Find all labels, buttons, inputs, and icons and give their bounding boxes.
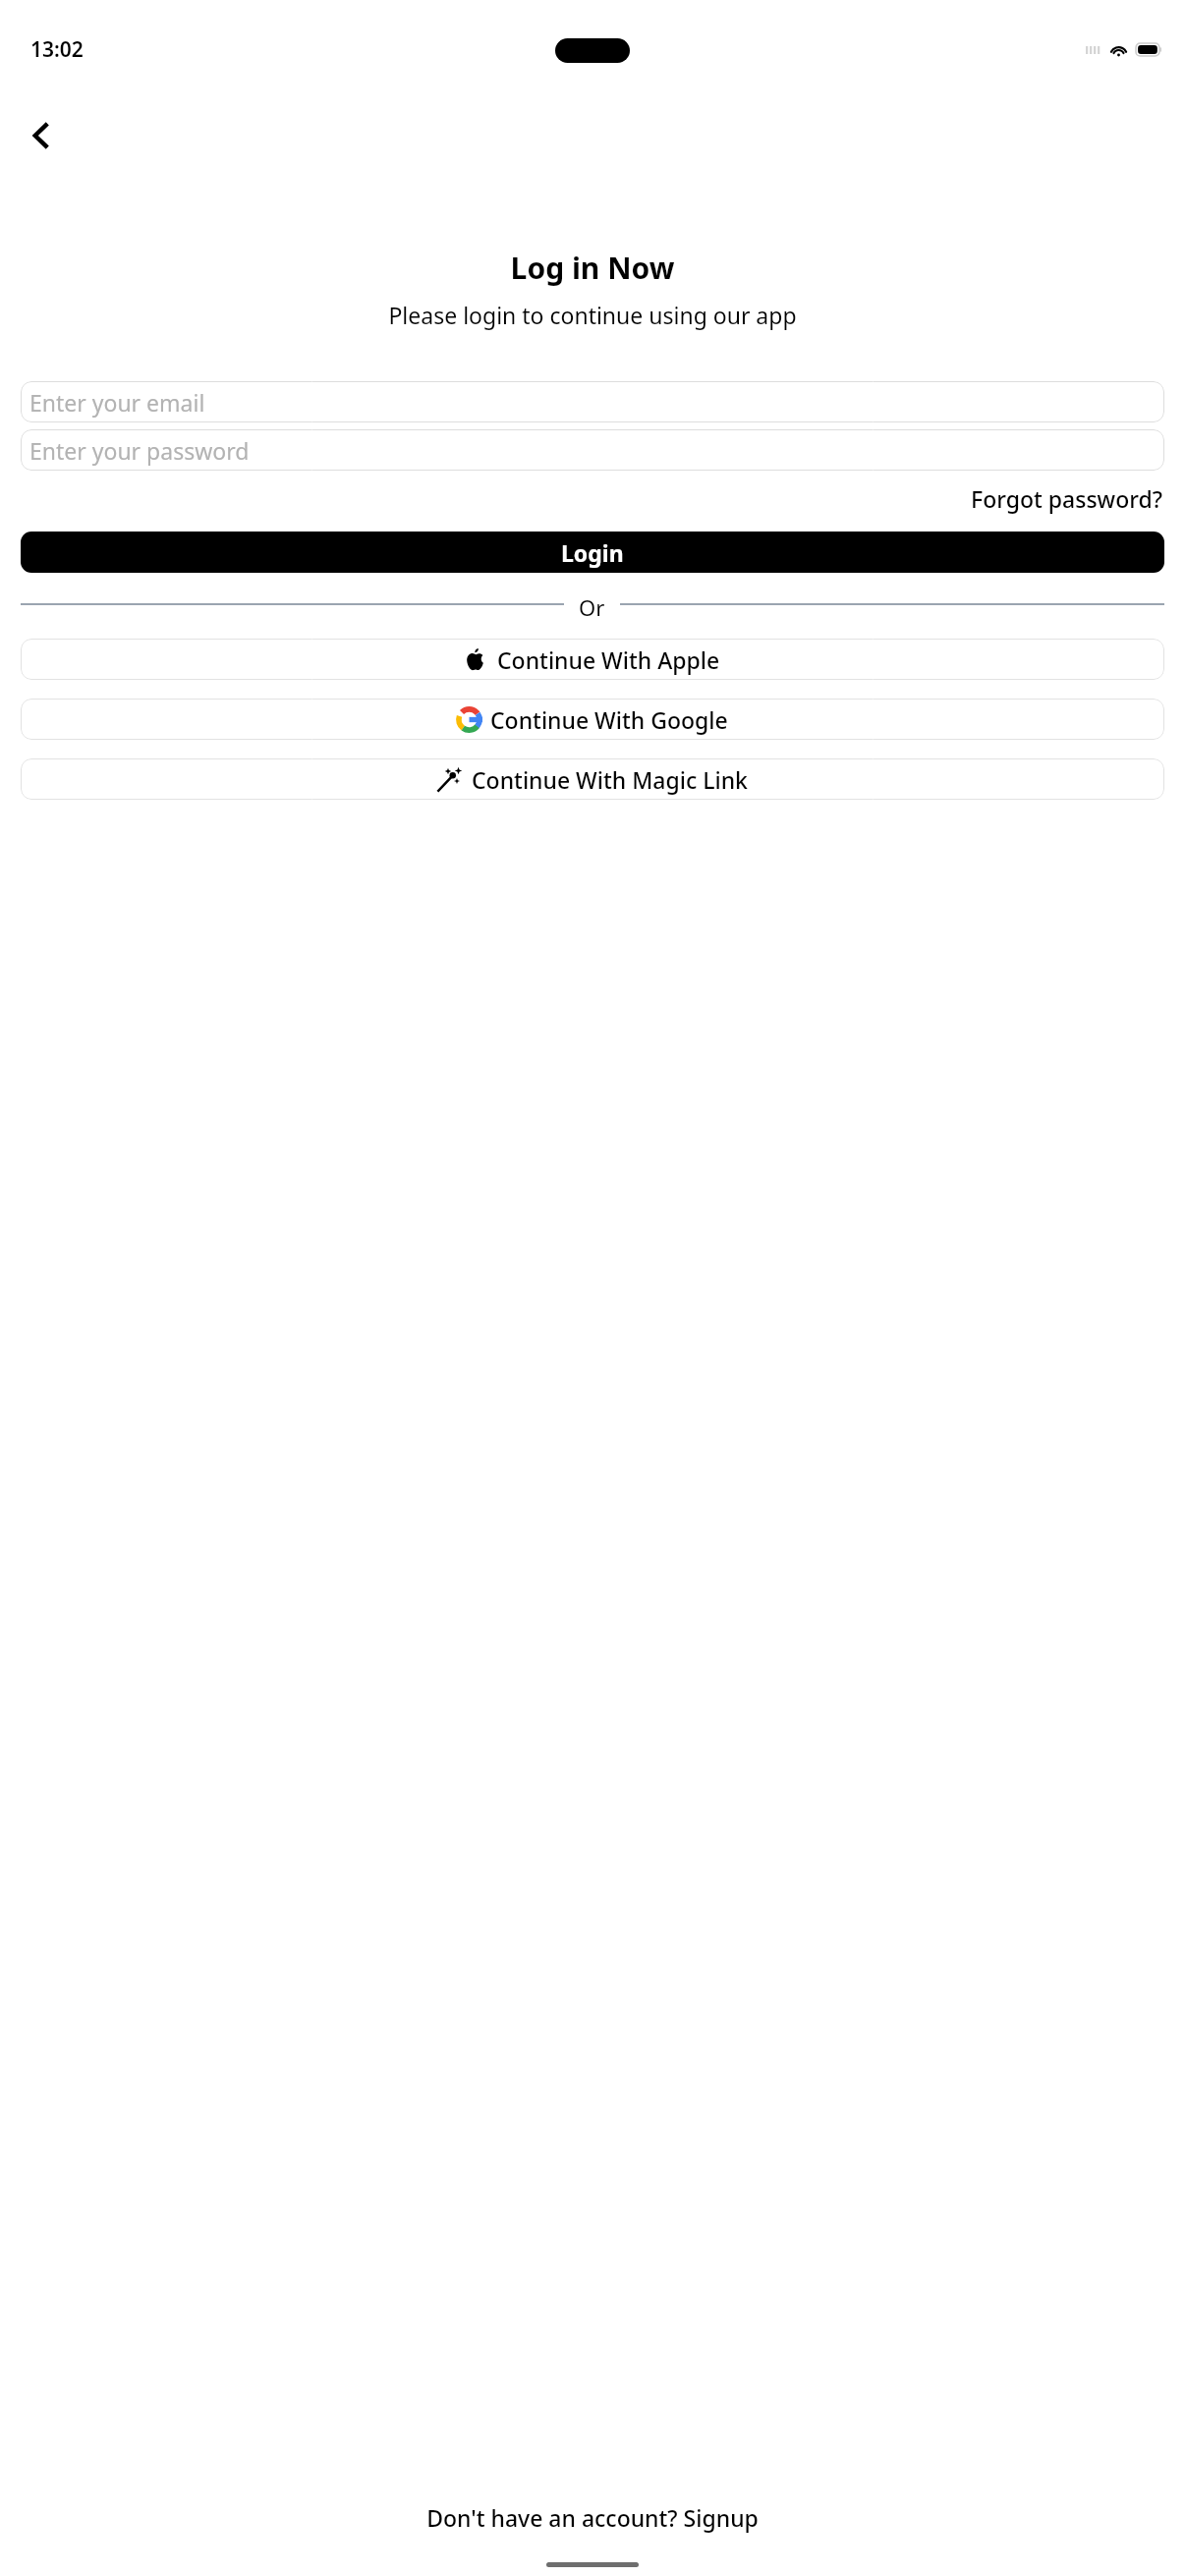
staticText: Continue With Magic Link <box>472 764 748 795</box>
button[interactable]: Enter your password <box>21 429 1164 471</box>
button[interactable]: Continue With Magic Link <box>21 758 1164 800</box>
button[interactable]: Back <box>14 108 69 163</box>
staticText: Don't have an account? Signup <box>426 2502 759 2533</box>
button[interactable]: Login <box>21 532 1164 573</box>
button[interactable]: Continue With Apple <box>21 639 1164 680</box>
staticText: Log in Now <box>0 248 1185 288</box>
staticText: Login <box>561 537 624 568</box>
staticText: Enter your password <box>29 435 250 466</box>
button[interactable]: Enter your email <box>21 381 1164 422</box>
staticText: Please login to continue using our app <box>0 300 1185 330</box>
staticText: Forgot password? <box>971 483 1162 514</box>
staticText: 13:02 <box>30 35 84 64</box>
staticText: Enter your email <box>29 387 205 418</box>
staticText: Continue With Apple <box>497 644 720 675</box>
button[interactable]: Continue With Google <box>21 699 1164 740</box>
button[interactable]: Forgot password? <box>969 481 1164 516</box>
staticText: Continue With Google <box>490 704 728 735</box>
staticText: Or <box>579 592 605 616</box>
button[interactable]: Don't have an account? Signup <box>0 2502 1185 2533</box>
